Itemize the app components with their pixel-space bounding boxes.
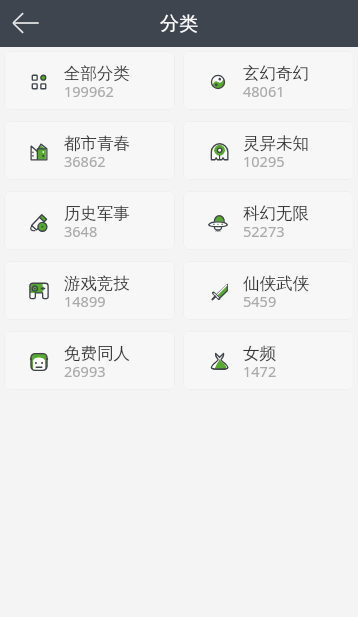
staticText: 5459 <box>243 291 277 311</box>
staticText: 1472 <box>243 361 277 381</box>
staticText: 48061 <box>243 81 285 101</box>
staticText: 女频 <box>243 343 276 364</box>
staticText: 36862 <box>64 151 106 171</box>
button[interactable]: 都市青春 <box>4 121 175 180</box>
staticText: 全部分类 <box>64 63 130 84</box>
staticText: 10295 <box>243 151 285 171</box>
button[interactable]: 女频 <box>183 331 354 390</box>
staticText: 52273 <box>243 221 285 241</box>
staticText: 199962 <box>64 81 114 101</box>
button[interactable]: 玄幻奇幻 <box>183 51 354 110</box>
staticText: 26993 <box>64 361 106 381</box>
staticText: 14899 <box>64 291 106 311</box>
staticText: 科幻无限 <box>243 203 309 224</box>
staticText: 都市青春 <box>64 133 130 154</box>
button[interactable]: 仙侠武侠 <box>183 261 354 320</box>
staticText: 玄幻奇幻 <box>243 63 309 84</box>
staticText: 仙侠武侠 <box>243 273 309 294</box>
button[interactable]: 游戏竞技 <box>4 261 175 320</box>
staticText: 历史军事 <box>64 203 130 224</box>
staticText: 灵异未知 <box>243 133 309 154</box>
button[interactable]: 灵异未知 <box>183 121 354 180</box>
button[interactable]: 免费同人 <box>4 331 175 390</box>
button[interactable]: 科幻无限 <box>183 191 354 250</box>
staticText: 3648 <box>64 221 98 241</box>
button[interactable]: 历史军事 <box>4 191 175 250</box>
staticText: 免费同人 <box>64 343 130 364</box>
staticText: 分类 <box>160 12 198 36</box>
staticText: 游戏竞技 <box>64 273 130 294</box>
button[interactable]: 全部分类 <box>4 51 175 110</box>
button[interactable]: Back <box>0 1 46 47</box>
